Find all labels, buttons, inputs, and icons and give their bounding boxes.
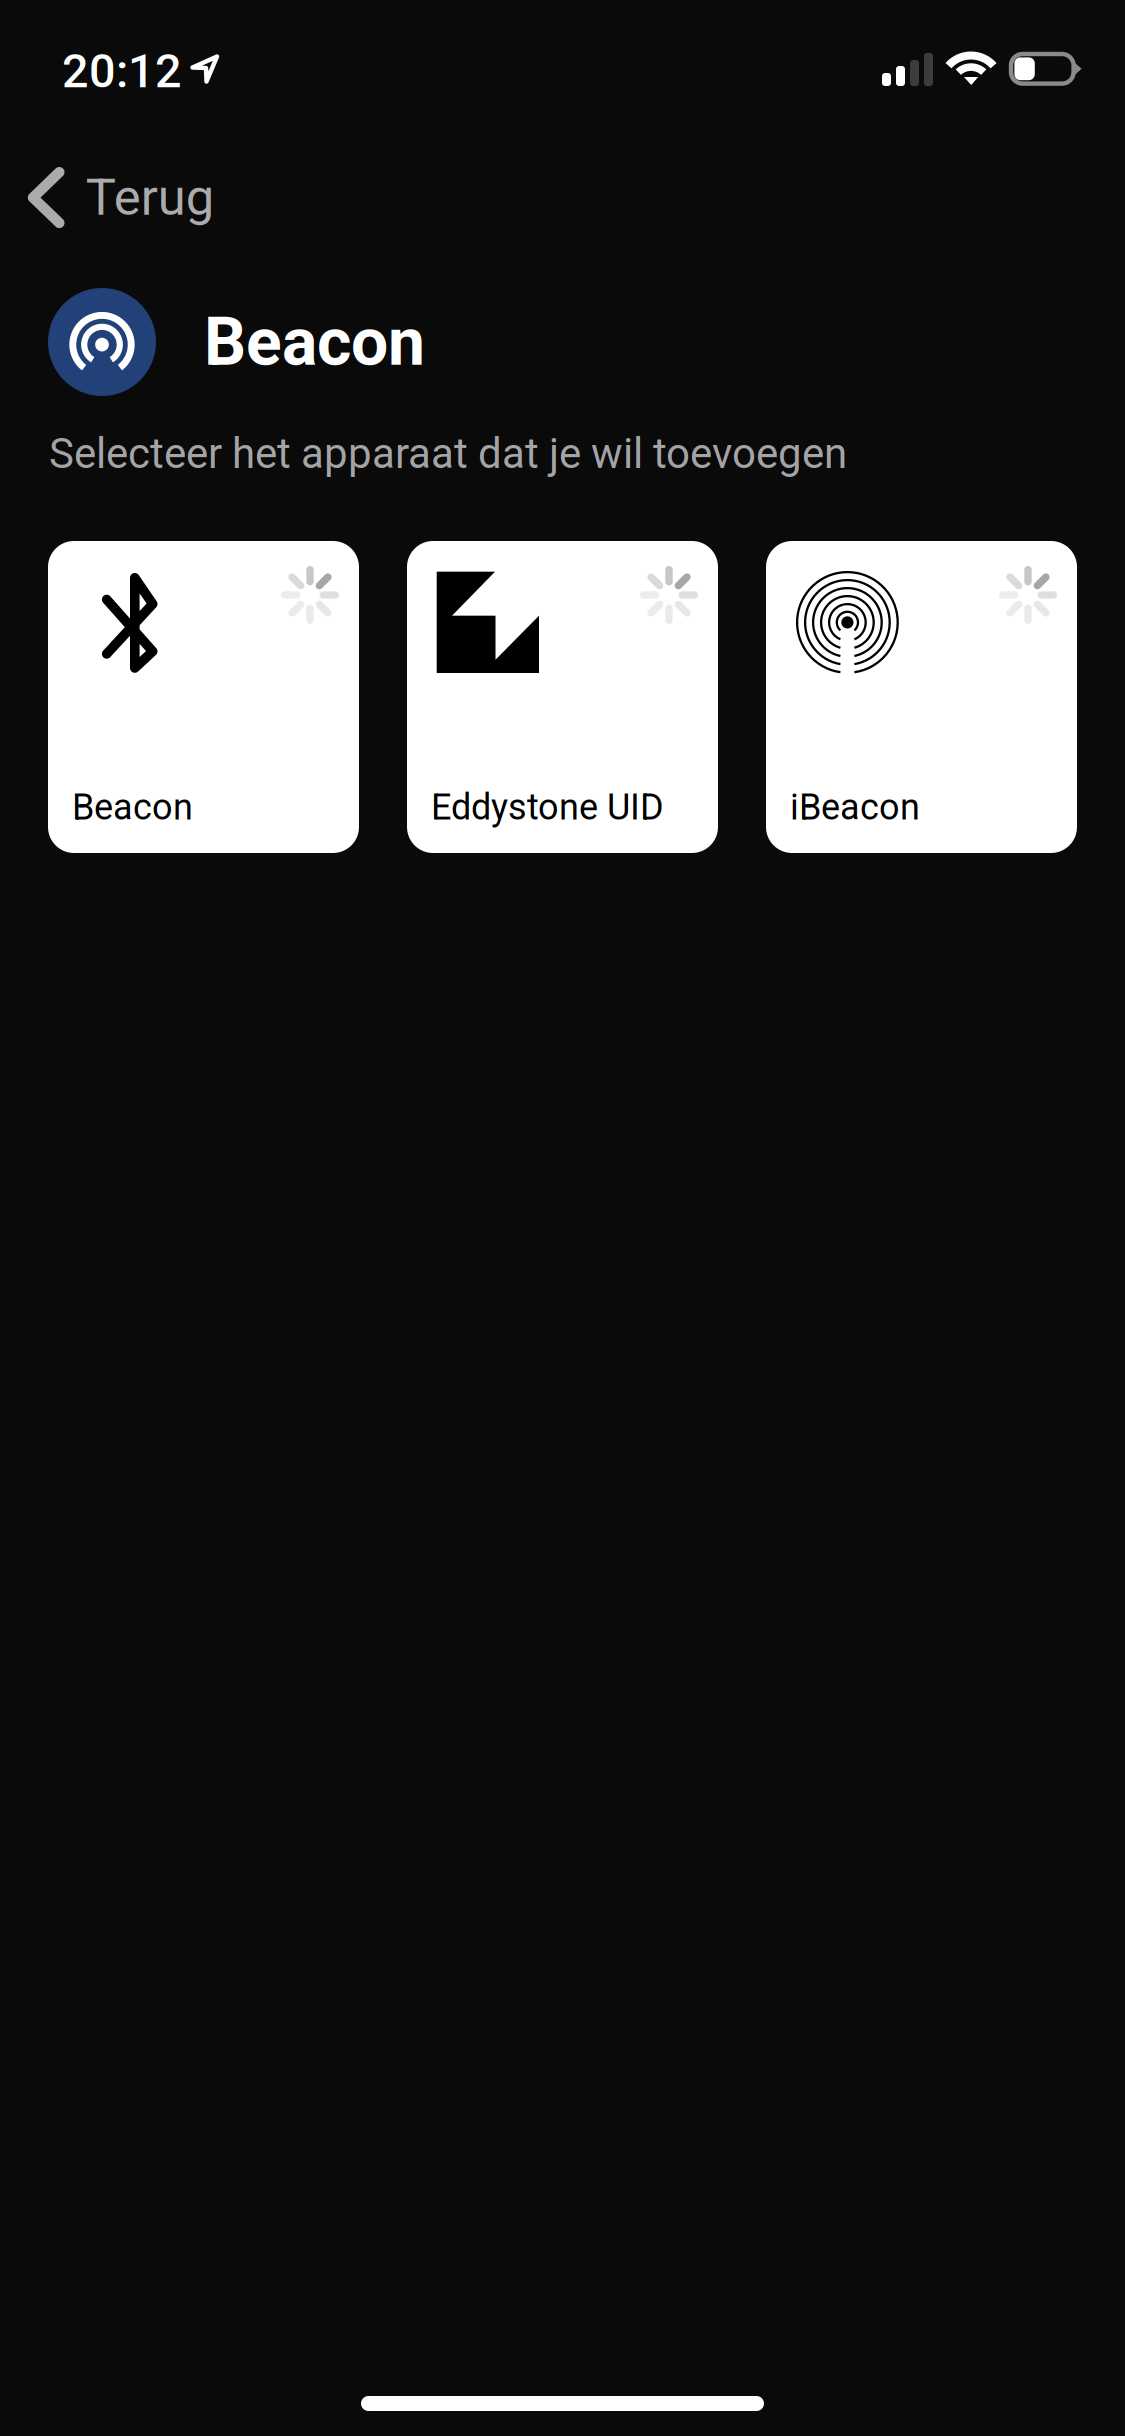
button[interactable]: Beacon: [48, 541, 359, 853]
button[interactable]: Eddystone UID: [407, 541, 718, 853]
button[interactable]: iBeacon: [766, 541, 1077, 853]
button[interactable]: Terug: [0, 145, 258, 250]
staticText: Beacon: [204, 303, 425, 381]
staticText: iBeacon: [790, 786, 920, 828]
staticText: Terug: [86, 168, 214, 227]
staticText: Eddystone UID: [431, 786, 664, 828]
staticText: Selecteer het apparaat dat je wil toevoe…: [49, 429, 847, 478]
staticText: 20:12: [62, 44, 182, 99]
staticText: Beacon: [72, 786, 193, 828]
